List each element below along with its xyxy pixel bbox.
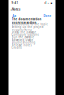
staticText: Setting up the project	[11, 25, 43, 29]
staticText: 9:41	[11, 1, 18, 5]
staticText: Introduction to the topic	[11, 22, 47, 26]
staticText: Advanced usage	[11, 38, 33, 42]
staticText: Done	[43, 14, 51, 18]
staticText: The documentation overview section	[11, 17, 41, 25]
staticText: Release notes	[11, 43, 31, 47]
button[interactable]: Done	[43, 14, 51, 18]
staticText: Credits	[11, 46, 21, 49]
staticText: ıl ⌁ ▪	[44, 1, 52, 5]
staticText: Notes	[12, 8, 20, 11]
staticText: Requirements	[11, 28, 31, 31]
staticText: ‹	[10, 7, 11, 12]
staticText: Install the package	[11, 30, 36, 34]
staticText: Run the example	[11, 35, 34, 39]
button[interactable]: Back	[10, 7, 11, 12]
staticText: Troubleshooting	[11, 41, 35, 44]
staticText: Aa	[12, 14, 16, 18]
button[interactable]: Aa	[12, 14, 16, 18]
staticText: Configure options	[11, 33, 38, 36]
